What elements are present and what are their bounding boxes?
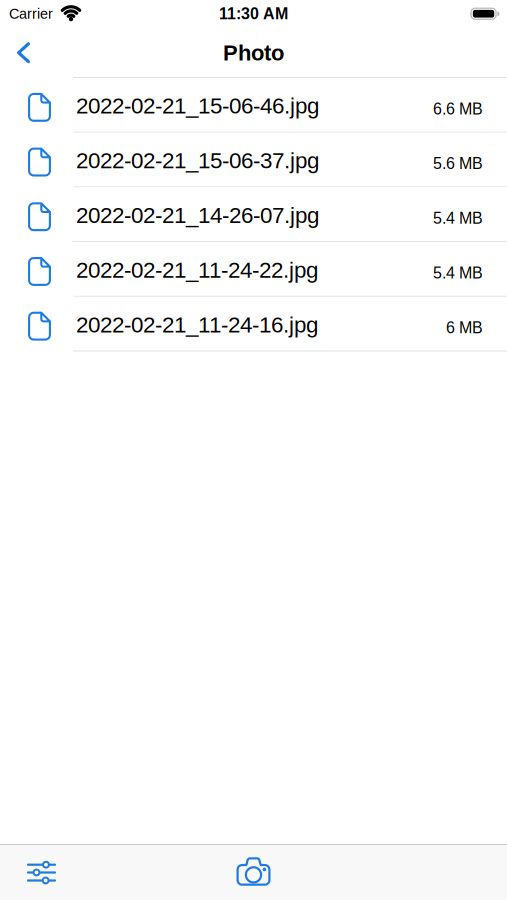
button[interactable]: Back — [0, 32, 44, 73]
button[interactable]: Filters — [0, 860, 55, 884]
staticText: 2022-02-21_11-24-16.jpg — [76, 312, 318, 337]
staticText: 2022-02-21_14-26-07.jpg — [76, 203, 319, 228]
button[interactable]: 2022-02-21_15-06-37.jpg — [0, 133, 507, 187]
staticText: 2022-02-21_15-06-37.jpg — [76, 148, 319, 173]
button[interactable]: 2022-02-21_11-24-22.jpg — [0, 242, 507, 297]
button[interactable]: 2022-02-21_15-06-46.jpg — [0, 78, 507, 133]
staticText: 2022-02-21_15-06-46.jpg — [76, 93, 319, 118]
staticText: 6 MB — [446, 319, 483, 337]
staticText: Carrier — [9, 6, 53, 22]
button[interactable]: 2022-02-21_14-26-07.jpg — [0, 187, 507, 242]
staticText: 2022-02-21_11-24-22.jpg — [76, 257, 318, 282]
staticText: 5.6 MB — [433, 155, 483, 172]
button[interactable]: 2022-02-21_11-24-16.jpg — [0, 297, 507, 351]
staticText: 5.4 MB — [433, 209, 483, 227]
button[interactable]: Camera — [236, 858, 270, 887]
staticText: 6.6 MB — [433, 100, 483, 118]
staticText: 11:30 AM — [219, 5, 288, 23]
staticText: 5.4 MB — [433, 264, 483, 282]
staticText: Photo — [223, 40, 284, 65]
